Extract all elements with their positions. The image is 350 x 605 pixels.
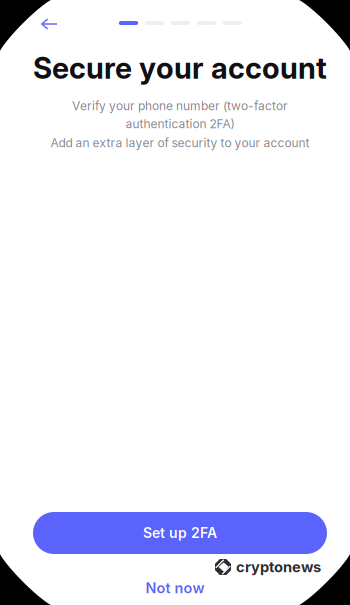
staticText: Add an extra layer of security to your a… bbox=[50, 136, 309, 150]
button[interactable]: Set up 2FA bbox=[33, 512, 327, 554]
button[interactable]: Not now bbox=[120, 578, 230, 598]
staticText: Not now bbox=[145, 579, 204, 597]
button[interactable]: Back bbox=[28, 11, 70, 37]
staticText: Set up 2FA bbox=[143, 524, 217, 541]
staticText: authentication 2FA) bbox=[125, 117, 234, 131]
staticText: Verify your phone number (two-factor bbox=[72, 99, 288, 113]
staticText: cryptonews bbox=[236, 558, 321, 576]
staticText: Secure your account bbox=[33, 50, 327, 86]
